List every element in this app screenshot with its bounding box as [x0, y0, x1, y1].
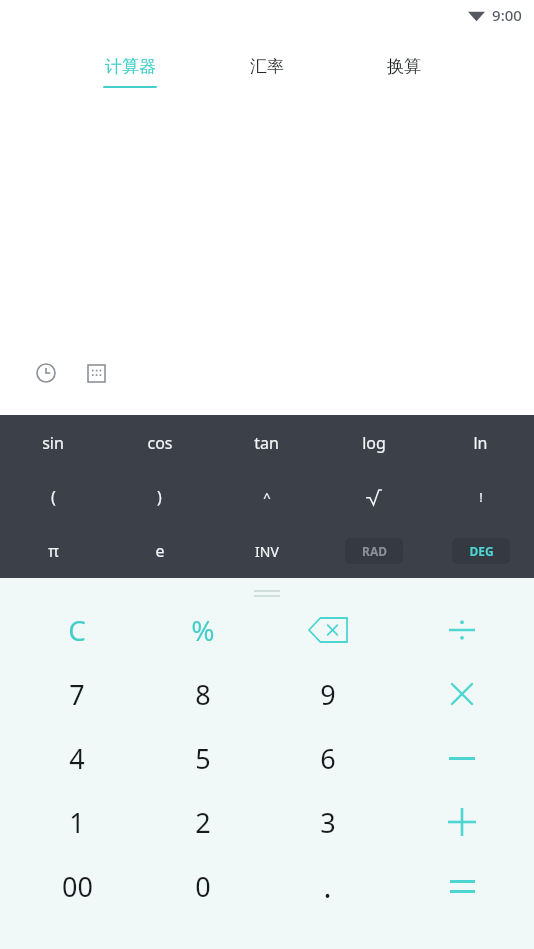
staticText: 汇率 [250, 56, 284, 77]
staticText: % [191, 611, 215, 649]
staticText: . [323, 866, 332, 907]
staticText: 8 [195, 676, 211, 713]
button[interactable]: INV [213, 524, 320, 578]
staticText: 换算 [387, 56, 421, 77]
button[interactable]: ! [427, 470, 534, 524]
button[interactable]: RAD [320, 524, 427, 578]
staticText: RAD [362, 543, 387, 559]
button[interactable] [390, 662, 534, 726]
button[interactable]: π [0, 524, 106, 578]
button[interactable]: Keypad [76, 353, 116, 393]
staticText: ) [157, 486, 162, 508]
staticText: ! [479, 488, 483, 506]
staticText: 9:00 [492, 5, 522, 25]
button[interactable]: 计算器 [62, 30, 198, 102]
button[interactable]: 1 [14, 790, 140, 854]
staticText: tan [254, 432, 279, 454]
button[interactable] [390, 598, 534, 662]
button[interactable]: sin [0, 415, 106, 470]
button[interactable]: e [106, 524, 213, 578]
button[interactable]: 9 [265, 662, 390, 726]
staticText: C [68, 611, 86, 649]
button[interactable]: 5 [140, 726, 265, 790]
button[interactable] [320, 470, 427, 524]
staticText: 9 [320, 676, 336, 713]
button[interactable]: 0 [140, 854, 265, 918]
button[interactable]: ln [427, 415, 534, 470]
staticText: 计算器 [105, 56, 156, 77]
button[interactable] [390, 854, 534, 918]
button[interactable]: 00 [14, 854, 140, 918]
button[interactable]: DEG [427, 524, 534, 578]
button[interactable] [390, 790, 534, 854]
staticText: 0 [195, 868, 211, 905]
staticText: π [48, 540, 59, 562]
button[interactable] [390, 726, 534, 790]
staticText: DEG [469, 543, 494, 559]
button[interactable]: 汇率 [198, 30, 335, 102]
button[interactable]: 8 [140, 662, 265, 726]
button[interactable]: RAD [345, 538, 403, 564]
staticText: 5 [195, 740, 211, 777]
button[interactable]: 7 [14, 662, 140, 726]
staticText: 00 [62, 868, 93, 905]
button[interactable]: % [140, 598, 265, 662]
button[interactable]: 2 [140, 790, 265, 854]
staticText: e [155, 540, 165, 562]
staticText: 7 [69, 676, 85, 713]
button[interactable]: History [26, 353, 66, 393]
button[interactable]: 3 [265, 790, 390, 854]
button[interactable]: 4 [14, 726, 140, 790]
button[interactable]: 换算 [335, 30, 472, 102]
staticText: 1 [69, 804, 85, 841]
staticText: sin [42, 432, 64, 454]
button[interactable]: ) [106, 470, 213, 524]
staticText: 2 [195, 804, 211, 841]
button[interactable]: ^ [213, 470, 320, 524]
staticText: 4 [69, 740, 85, 777]
button[interactable]: . [265, 854, 390, 918]
button[interactable]: C [14, 598, 140, 662]
staticText: ln [473, 432, 488, 454]
button[interactable]: ( [0, 470, 106, 524]
staticText: ^ [263, 488, 271, 506]
staticText: 3 [320, 804, 336, 841]
button[interactable]: 6 [265, 726, 390, 790]
staticText: cos [147, 432, 173, 454]
button[interactable]: tan [213, 415, 320, 470]
staticText: ( [51, 486, 56, 508]
button[interactable]: Backspace [265, 598, 390, 662]
staticText: 6 [320, 740, 336, 777]
button[interactable]: cos [106, 415, 213, 470]
staticText: log [362, 432, 386, 454]
button[interactable]: DEG [452, 538, 510, 564]
button[interactable]: log [320, 415, 427, 470]
staticText: INV [255, 542, 279, 561]
